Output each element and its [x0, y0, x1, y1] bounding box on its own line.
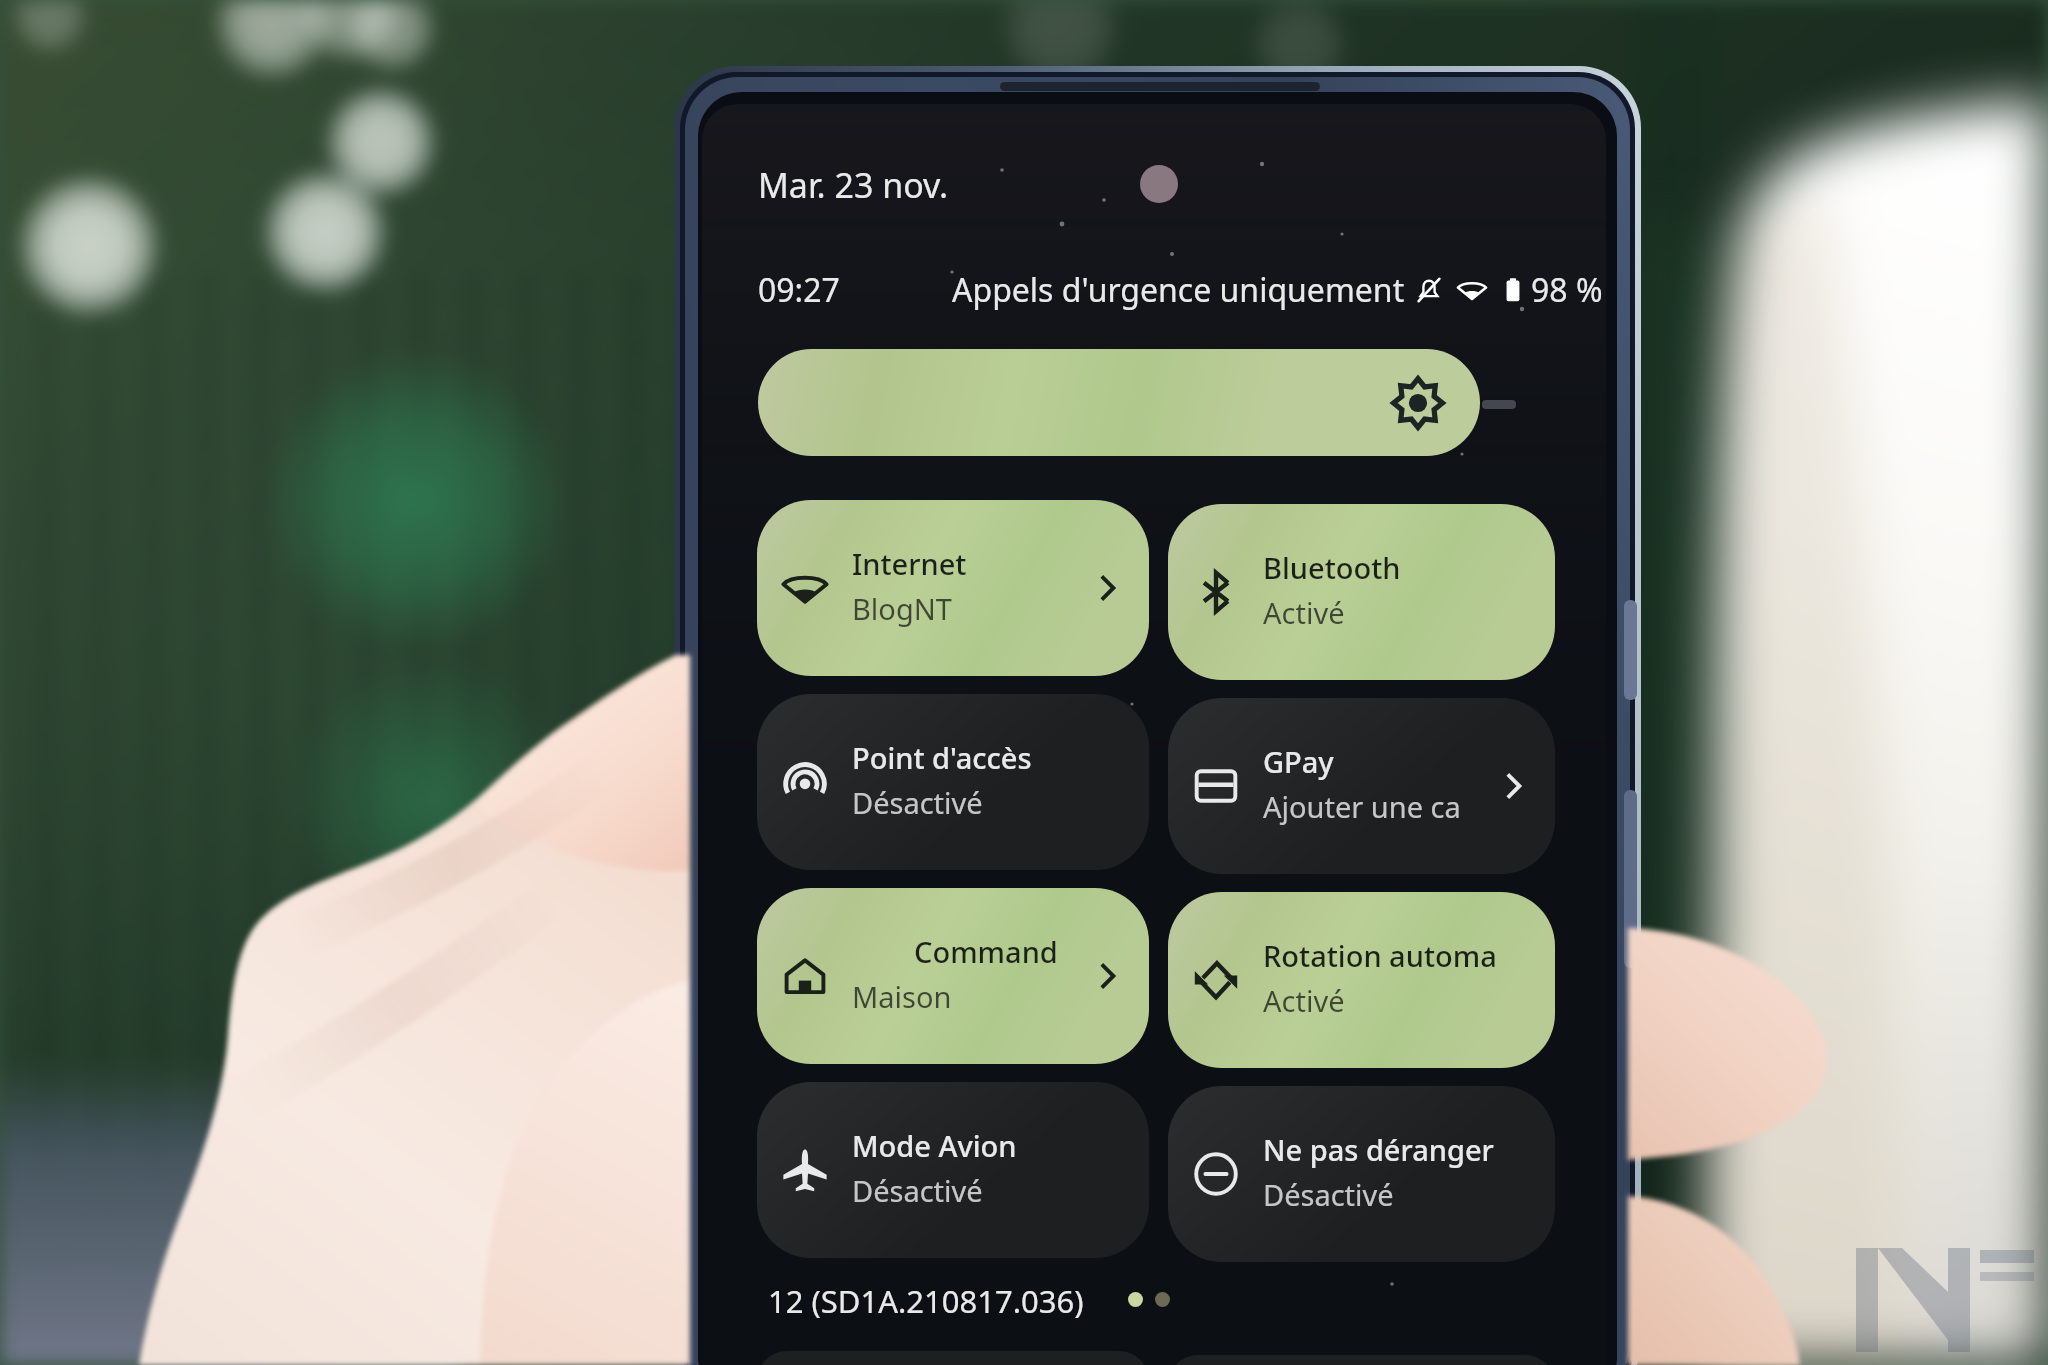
staticText: Maison	[852, 977, 952, 1016]
button[interactable]: Command	[757, 888, 1149, 1064]
button[interactable]: Bluetooth	[1168, 504, 1555, 680]
staticText: Ajouter une ca	[1263, 787, 1461, 826]
staticText: 12 (SD1A.210817.036)	[768, 1280, 1084, 1322]
staticText: Bluetooth	[1263, 548, 1401, 587]
staticText: Point d'accès	[852, 738, 1032, 777]
staticText: Rotation automa	[1263, 936, 1497, 975]
staticText: Désactivé	[852, 783, 983, 822]
staticText: 98 %	[1531, 268, 1603, 312]
staticText: Appels d'urgence uniquement	[952, 268, 1405, 312]
staticText: Mar. 23 nov.	[758, 162, 949, 208]
button[interactable]: Internet	[757, 500, 1149, 676]
staticText: Désactivé	[1263, 1175, 1394, 1214]
staticText: Activé	[1263, 593, 1345, 632]
staticText: Command	[914, 932, 1058, 971]
staticText: Internet	[852, 544, 967, 583]
staticText: Mode Avion	[852, 1126, 1017, 1165]
staticText: 09:27	[758, 268, 840, 312]
button[interactable]: Ne pas déranger	[1168, 1086, 1555, 1262]
button[interactable]: Point d'accès	[757, 694, 1149, 870]
button[interactable]: GPay	[1168, 698, 1555, 874]
button[interactable]: Rotation automa	[1168, 892, 1555, 1068]
button[interactable]: Mode Avion	[757, 1082, 1149, 1258]
staticText: Ne pas déranger	[1263, 1130, 1494, 1169]
button[interactable]: Brightness	[758, 349, 1480, 456]
staticText: Désactivé	[852, 1171, 983, 1210]
staticText: BlogNT	[852, 589, 952, 628]
staticText: GPay	[1263, 742, 1334, 781]
staticText: Activé	[1263, 981, 1345, 1020]
